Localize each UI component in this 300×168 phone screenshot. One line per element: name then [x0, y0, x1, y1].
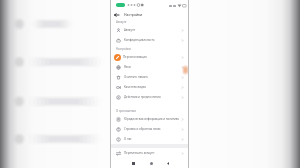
button[interactable]: Главный экран — [147, 158, 155, 168]
button[interactable]: Назад — [164, 158, 172, 168]
staticText: Настройки — [116, 47, 131, 51]
button[interactable]: Юридическая информация и политика — [111, 114, 188, 124]
button[interactable]: Язык — [111, 62, 188, 72]
staticText: Действия и предпочтения — [124, 95, 161, 99]
staticText: Персонализация — [123, 55, 147, 59]
staticText: Язык — [124, 65, 131, 69]
button[interactable]: Переключить аккаунт — [111, 148, 188, 158]
button[interactable]: О нас — [111, 134, 188, 144]
staticText: Настройки — [124, 12, 143, 17]
staticText: Переключить аккаунт — [124, 151, 155, 155]
staticText: Очистить память — [124, 75, 149, 79]
staticText: Юридическая информация и политика — [124, 117, 179, 121]
staticText: О приложении — [116, 109, 137, 113]
staticText: Справка и обратная связь — [124, 127, 161, 131]
button[interactable]: Очистить память — [111, 72, 188, 82]
button[interactable]: Недавние приложения — [129, 158, 137, 168]
staticText: О нас — [124, 137, 132, 141]
staticText: Аккаунт — [124, 28, 136, 32]
button[interactable]: Назад — [111, 10, 122, 19]
staticText: Конфиденциальность — [124, 38, 155, 42]
button[interactable]: Справка и обратная связь — [111, 124, 188, 134]
button[interactable]: Персонализация — [111, 52, 188, 62]
button[interactable]: Аккаунт — [111, 25, 188, 35]
staticText: Аккаунт — [116, 20, 127, 24]
button[interactable]: Действия и предпочтения — [111, 92, 188, 102]
button[interactable]: Конфиденциальность — [111, 35, 188, 45]
button[interactable]: Качество видео — [111, 82, 188, 92]
staticText: Качество видео — [124, 85, 147, 89]
